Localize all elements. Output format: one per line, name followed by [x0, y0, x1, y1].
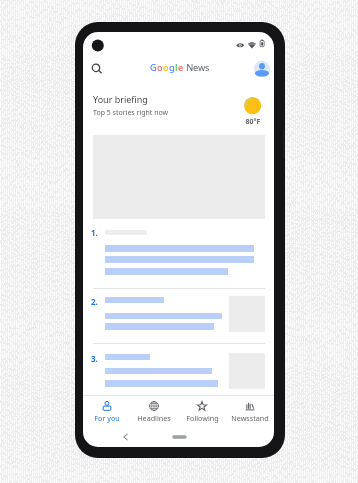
staticText: Top 5 stories right now	[93, 108, 169, 118]
staticText: Newsstand	[231, 413, 269, 423]
staticText: 80°F	[245, 117, 261, 127]
staticText: G	[150, 61, 157, 74]
staticText: e	[178, 61, 184, 74]
button[interactable]: Search	[85, 57, 107, 79]
staticText: Following	[186, 413, 219, 423]
button[interactable]: 2.	[84, 293, 274, 337]
staticText: News	[184, 61, 210, 74]
button[interactable]: Headlines	[130, 398, 178, 423]
button[interactable]: 1.	[84, 224, 274, 284]
button[interactable]: Newsstand	[226, 398, 274, 423]
staticText: Your briefing	[93, 93, 148, 105]
staticText: For you	[94, 413, 120, 423]
button[interactable]: Following	[178, 398, 226, 423]
staticText: o	[157, 61, 163, 74]
button[interactable]: 3.	[84, 350, 274, 394]
staticText: o	[163, 61, 169, 74]
button[interactable]: For you	[83, 398, 130, 423]
staticText: l	[175, 61, 178, 74]
staticText: g	[169, 61, 175, 74]
staticText: 2.	[91, 296, 98, 307]
staticText: 3.	[91, 353, 98, 364]
staticText: 1.	[91, 227, 98, 238]
button[interactable]: Account	[253, 60, 271, 78]
staticText: Headlines	[137, 413, 171, 423]
